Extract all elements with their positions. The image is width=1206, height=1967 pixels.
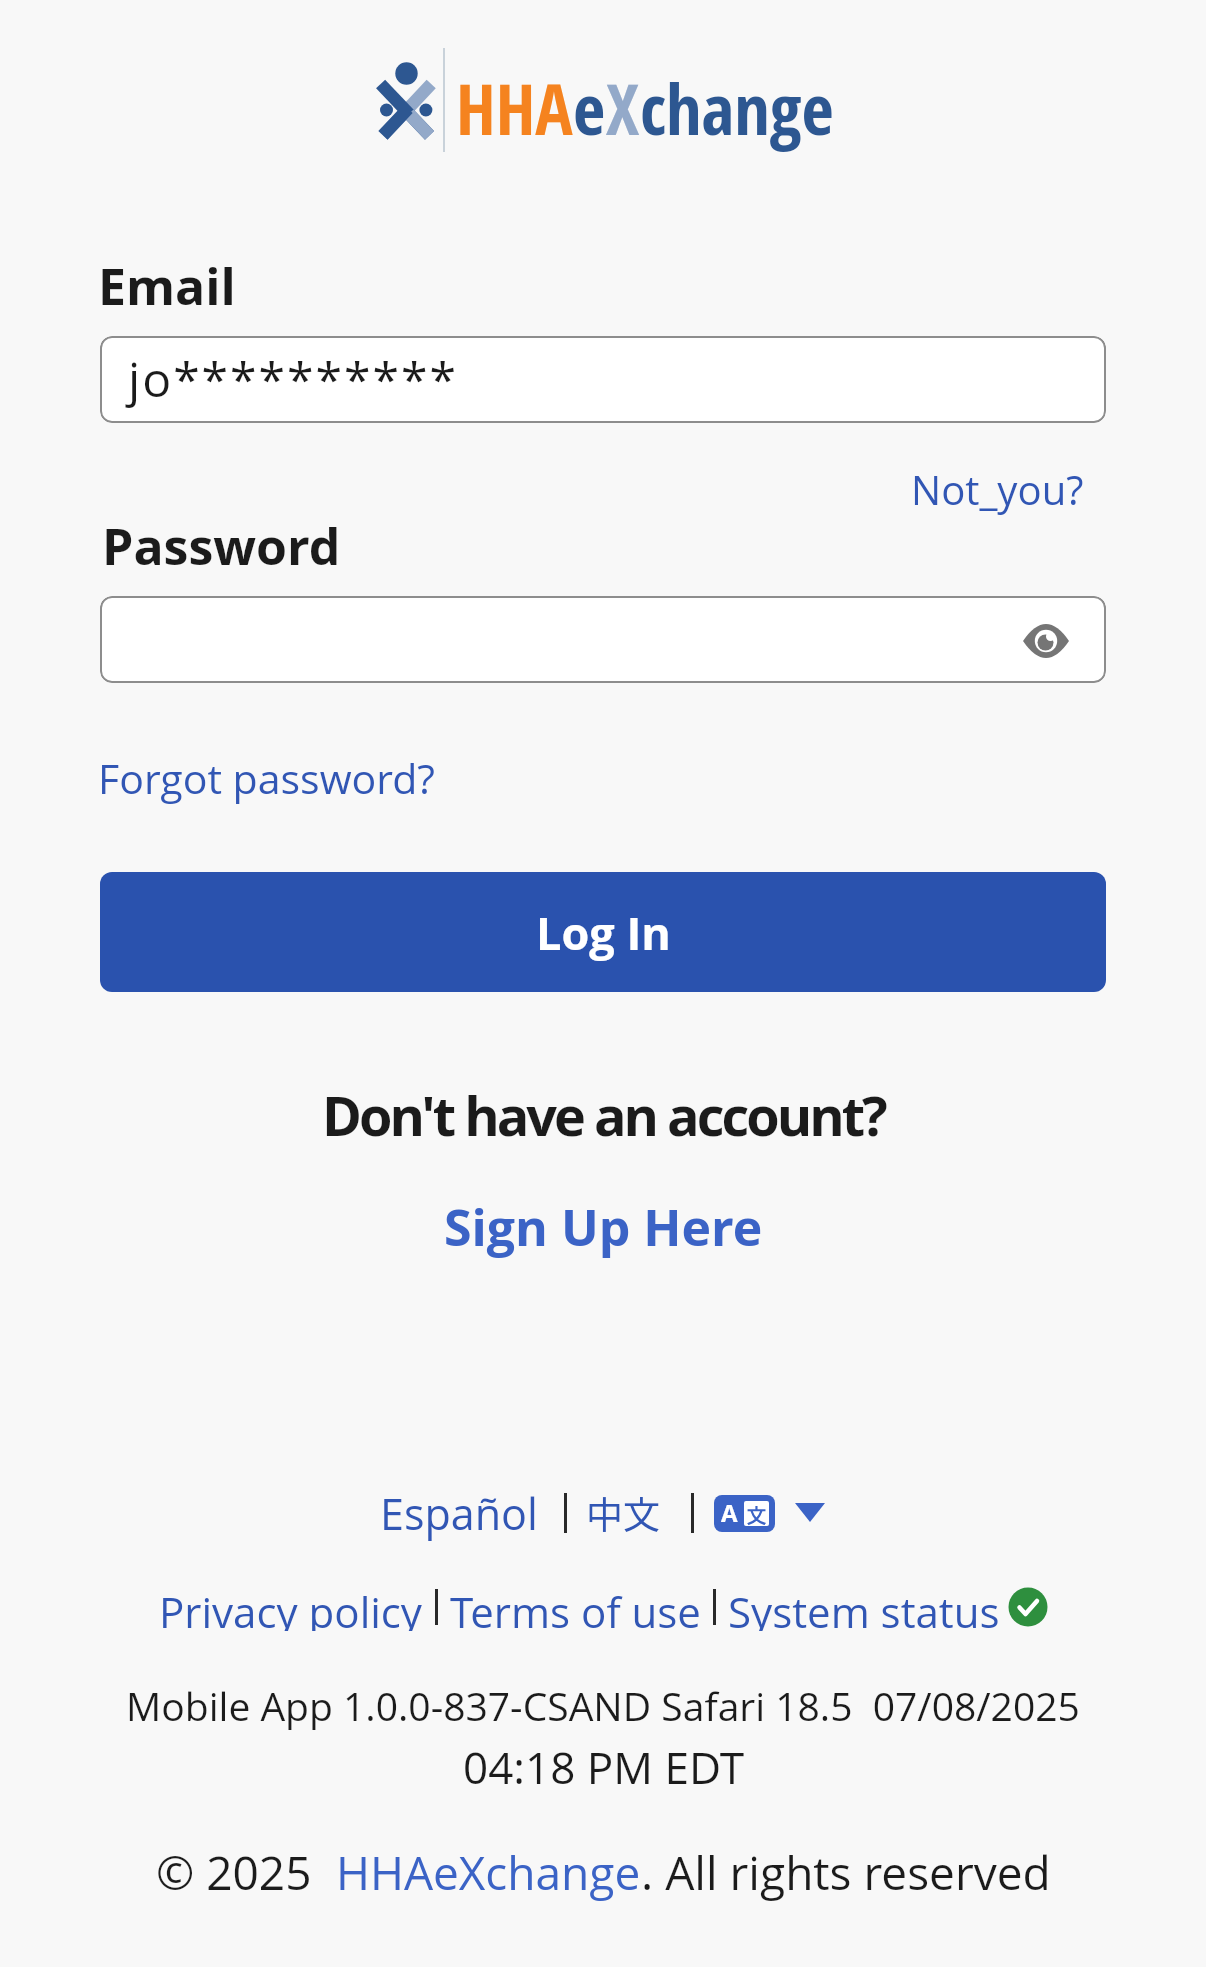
staticText: 04:18 PM EDT [463, 1737, 744, 1797]
button[interactable]: Forgot password? [98, 750, 435, 806]
button[interactable]: Sign Up Here [444, 1193, 763, 1261]
staticText: A [721, 1496, 738, 1529]
staticText: Email [98, 252, 236, 320]
button[interactable] [794, 1503, 826, 1523]
staticText: jo********** [128, 346, 458, 411]
staticText: © 2025 [156, 1841, 336, 1904]
button[interactable]: Not_you? [911, 462, 1084, 516]
button[interactable]: jo********** [100, 336, 1106, 423]
button[interactable]: System status [728, 1583, 1000, 1631]
staticText: Español [380, 1484, 538, 1543]
staticText: Forgot password? [98, 750, 435, 806]
staticText: Don't have an account? [322, 1078, 885, 1152]
button[interactable] [1023, 624, 1069, 658]
staticText: 文 [747, 1501, 767, 1526]
staticText: e [573, 60, 606, 155]
staticText: X [606, 60, 640, 155]
staticText: Sign Up Here [444, 1193, 763, 1261]
button[interactable]: Log In [100, 872, 1106, 992]
staticText: 中文 [586, 1486, 660, 1540]
staticText: . All rights reserved [641, 1841, 1051, 1904]
staticText: change [640, 60, 834, 155]
button[interactable]: Privacy policy [159, 1583, 423, 1631]
button[interactable]: Terms of use [450, 1583, 701, 1631]
staticText: Not_you? [911, 462, 1084, 516]
button[interactable]: Español [380, 1484, 538, 1543]
button[interactable]: 中文 [586, 1486, 660, 1540]
button[interactable] [100, 596, 1106, 683]
staticText: System status [728, 1583, 1000, 1631]
staticText: Terms of use [450, 1583, 701, 1631]
staticText: Mobile App 1.0.0-837-CSAND Safari 18.5 0… [126, 1679, 1080, 1732]
staticText: Password [102, 512, 341, 580]
staticText: HHAeXchange [336, 1841, 641, 1904]
staticText: Privacy policy [159, 1583, 423, 1631]
staticText: Log In [536, 902, 671, 963]
staticText: HHA [456, 60, 573, 155]
button[interactable]: A [714, 1495, 775, 1532]
button[interactable]: HHAeXchange [336, 1841, 641, 1904]
